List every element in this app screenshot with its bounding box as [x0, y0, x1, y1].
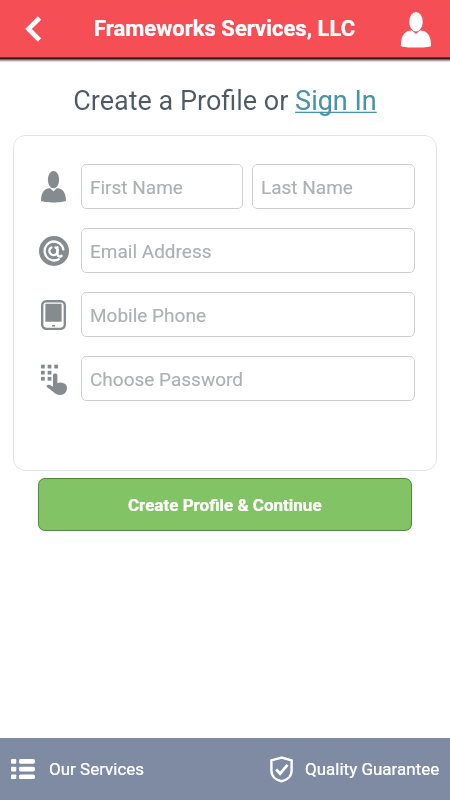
staticText: Mobile Phone: [90, 304, 206, 326]
button[interactable]: First Name: [81, 164, 243, 209]
staticText: Our Services: [49, 759, 145, 779]
staticText: First Name: [90, 176, 183, 198]
button[interactable]: Quality Guarantee: [225, 738, 450, 800]
button[interactable]: Mobile Phone: [81, 292, 415, 337]
staticText: Create a Profile or Sign In: [0, 85, 450, 117]
button[interactable]: Create Profile & Continue: [38, 478, 412, 531]
staticText: Email Address: [90, 240, 212, 262]
button[interactable]: Email Address: [81, 228, 415, 273]
staticText: Choose Password: [90, 368, 244, 390]
button[interactable]: Choose Password: [81, 356, 415, 401]
staticText: Create Profile & Continue: [128, 495, 322, 515]
button[interactable]: Back: [13, 8, 55, 50]
staticText: Quality Guarantee: [305, 759, 440, 779]
button[interactable]: Our Services: [0, 738, 225, 800]
button[interactable]: Profile: [398, 11, 434, 47]
staticText: Frameworks Services, LLC: [94, 16, 356, 42]
button[interactable]: Last Name: [252, 164, 415, 209]
staticText: Last Name: [261, 176, 353, 198]
